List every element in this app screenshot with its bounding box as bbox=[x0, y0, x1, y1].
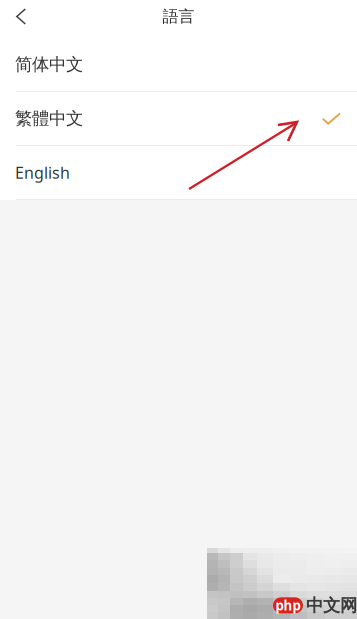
button[interactable]: English bbox=[0, 146, 357, 200]
staticText: php bbox=[275, 596, 300, 614]
staticText: 中文网 bbox=[306, 595, 357, 616]
button[interactable]: Back bbox=[0, 0, 42, 38]
button[interactable]: 繁體中文 bbox=[0, 92, 357, 146]
staticText: 简体中文 bbox=[15, 54, 83, 75]
staticText: 語言 bbox=[162, 7, 194, 26]
button[interactable]: 简体中文 bbox=[0, 38, 357, 92]
staticText: 繁體中文 bbox=[15, 108, 83, 129]
staticText: English bbox=[15, 162, 70, 183]
